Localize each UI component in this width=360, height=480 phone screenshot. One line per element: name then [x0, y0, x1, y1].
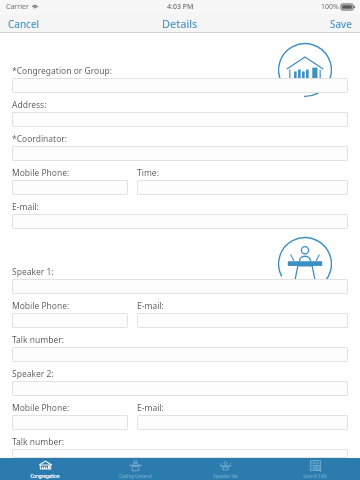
staticText: Congregation — [30, 473, 60, 479]
button[interactable] — [137, 180, 348, 195]
staticText: *Congregation or Group: — [12, 65, 112, 77]
button[interactable] — [137, 313, 348, 328]
other: Congregation — [272, 37, 338, 103]
other: Speaker — [272, 231, 338, 297]
staticText: E-mail: — [137, 402, 164, 414]
button[interactable]: Outing General — [90, 458, 180, 480]
button[interactable]: Cancel — [0, 15, 48, 33]
staticText: 4:03 PM — [167, 2, 194, 12]
staticText: Mobile Phone: — [12, 402, 70, 414]
staticText: *Coordinator: — [12, 133, 68, 145]
button[interactable] — [12, 180, 128, 195]
button[interactable]: Search Talk — [270, 458, 360, 480]
button[interactable]: Congregation — [0, 458, 90, 480]
staticText: Mobile Phone: — [12, 167, 70, 179]
staticText: E-mail: — [137, 300, 164, 312]
staticText: E-mail: — [12, 201, 39, 213]
staticText: Details — [162, 16, 198, 31]
button[interactable]: Save — [322, 15, 360, 33]
button[interactable] — [12, 449, 348, 458]
button[interactable]: Speaker list — [180, 458, 270, 480]
button[interactable] — [12, 78, 348, 93]
staticText: Save — [330, 17, 352, 31]
button[interactable] — [12, 313, 128, 328]
button[interactable] — [12, 347, 348, 362]
staticText: Cancel — [8, 17, 40, 31]
staticText: Outing General — [119, 473, 152, 479]
staticText: 100% — [321, 2, 339, 12]
staticText: Search Talk — [303, 473, 327, 479]
staticText: Speaker 1: — [12, 266, 54, 278]
button[interactable] — [137, 415, 348, 430]
staticText: Carrier — [6, 2, 29, 12]
staticText: Time: — [137, 167, 159, 179]
button[interactable] — [12, 214, 348, 229]
button[interactable] — [12, 279, 348, 294]
staticText: Talk number: — [12, 436, 65, 448]
staticText: Talk number: — [12, 334, 65, 346]
button[interactable] — [12, 146, 348, 161]
button[interactable] — [12, 415, 128, 430]
staticText: Mobile Phone: — [12, 300, 70, 312]
staticText: Address: — [12, 99, 47, 111]
staticText: Speaker 2: — [12, 368, 54, 380]
staticText: Speaker list — [213, 473, 238, 479]
button[interactable] — [12, 112, 348, 127]
button[interactable] — [12, 381, 348, 396]
